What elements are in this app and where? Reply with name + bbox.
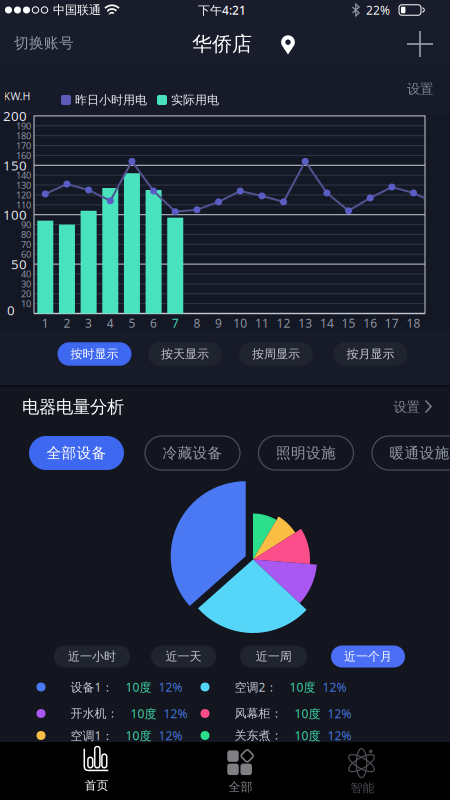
staticText: 下午4:21 [198, 2, 246, 18]
staticText: 15 [341, 315, 355, 331]
staticText: 3 [85, 315, 92, 331]
staticText: 近一小时 [68, 649, 116, 664]
button[interactable]: 近一小时 [54, 645, 130, 667]
button[interactable]: 照明设施 [258, 436, 353, 470]
button[interactable]: 冷藏设备 [145, 436, 240, 470]
staticText: 110 [16, 199, 31, 211]
button[interactable]: 近一周 [240, 645, 307, 667]
staticText: 切换账号 [14, 34, 74, 52]
staticText: 12 [277, 315, 291, 331]
staticText: 160 [16, 149, 31, 162]
staticText: 10度 [125, 727, 151, 743]
staticText: 100 [3, 206, 27, 223]
staticText: 11 [255, 315, 269, 331]
staticText: 12% [322, 679, 346, 695]
staticText: 按月显示 [346, 347, 394, 361]
button[interactable]: 智能 [317, 744, 407, 800]
staticText: 实际用电 [171, 93, 219, 107]
staticText: 12% [327, 705, 351, 721]
button[interactable]: 按周显示 [239, 342, 313, 366]
staticText: 按周显示 [252, 347, 300, 361]
staticText: 10度 [125, 679, 151, 695]
staticText: 9 [215, 315, 222, 331]
staticText: 150 [3, 156, 27, 174]
staticText: 按天显示 [161, 347, 209, 361]
staticText: 10度 [130, 705, 156, 721]
staticText: 昨日小时用电 [75, 93, 147, 107]
staticText: 冷藏设备 [162, 444, 222, 462]
staticText: 80 [21, 228, 31, 241]
staticText: 关东煮： [234, 728, 282, 743]
staticText: 22% [366, 2, 390, 18]
staticText: 10 [233, 315, 247, 331]
staticText: 17 [385, 315, 399, 331]
staticText: 40 [21, 268, 31, 280]
button[interactable]: 暖通设施 [372, 436, 450, 470]
staticText: 60 [21, 248, 31, 260]
staticText: 12% [158, 727, 182, 743]
staticText: 170 [16, 139, 31, 152]
staticText: 按时显示 [70, 347, 118, 361]
staticText: 12% [158, 679, 182, 695]
staticText: 7 [172, 315, 179, 331]
staticText: 空调1： [70, 727, 113, 743]
staticText: 10度 [294, 705, 320, 721]
staticText: 近一个月 [344, 649, 392, 664]
staticText: 18 [406, 315, 420, 331]
staticText: 智能 [350, 781, 374, 795]
staticText: 开水机： [70, 706, 118, 721]
staticText: 16 [363, 315, 377, 331]
button[interactable]: 全部设备 [29, 436, 124, 470]
staticText: 设置 [407, 81, 433, 97]
staticText: 全部设备 [46, 444, 106, 462]
staticText: 10 [21, 297, 31, 310]
staticText: 空调2： [234, 679, 277, 695]
button[interactable]: 首页 [51, 741, 141, 797]
button[interactable]: 按天显示 [148, 342, 222, 366]
staticText: 10度 [294, 727, 320, 743]
staticText: 200 [3, 107, 27, 125]
button[interactable]: 设置 [395, 76, 445, 102]
staticText: 暖通设施 [389, 444, 449, 462]
staticText: KW.H [3, 89, 30, 103]
staticText: 190 [16, 120, 31, 132]
staticText: 8 [193, 315, 200, 331]
staticText: 1 [42, 315, 49, 331]
staticText: 6 [150, 315, 157, 331]
staticText: 90 [21, 218, 31, 231]
staticText: 5 [128, 315, 135, 331]
button[interactable]: 近一个月 [331, 645, 405, 667]
staticText: 风幕柜： [234, 706, 282, 721]
staticText: 70 [21, 238, 31, 250]
staticText: 120 [16, 189, 31, 201]
button[interactable]: 近一天 [151, 645, 216, 667]
staticText: 12% [327, 727, 351, 743]
staticText: 13 [298, 315, 312, 331]
button[interactable]: 设置 [383, 394, 443, 420]
staticText: 180 [16, 129, 31, 142]
staticText: 14 [320, 315, 334, 331]
staticText: 0 [7, 301, 15, 319]
staticText: 设置 [393, 399, 419, 415]
staticText: 近一天 [165, 649, 201, 664]
staticText: 电器电量分析 [22, 396, 124, 418]
staticText: 130 [16, 179, 31, 191]
staticText: 中国联通 [53, 3, 101, 17]
button[interactable]: 切换账号 [4, 21, 84, 65]
staticText: 全部 [228, 780, 252, 794]
button[interactable]: 选择门店位置 [277, 32, 299, 58]
staticText: 华侨店 [192, 32, 252, 56]
staticText: 140 [16, 169, 31, 181]
button[interactable]: 按时显示 [57, 342, 131, 366]
button[interactable]: 按月显示 [333, 342, 407, 366]
staticText: 4 [107, 315, 114, 331]
button[interactable]: 全部 [195, 744, 285, 800]
staticText: 设备1： [70, 679, 113, 695]
staticText: 30 [21, 278, 31, 290]
staticText: 照明设施 [276, 444, 336, 462]
staticText: 20 [21, 287, 31, 300]
button[interactable]: 添加 [402, 26, 438, 62]
staticText: 50 [11, 255, 27, 273]
staticText: 首页 [84, 778, 108, 793]
staticText: 近一周 [256, 649, 292, 664]
